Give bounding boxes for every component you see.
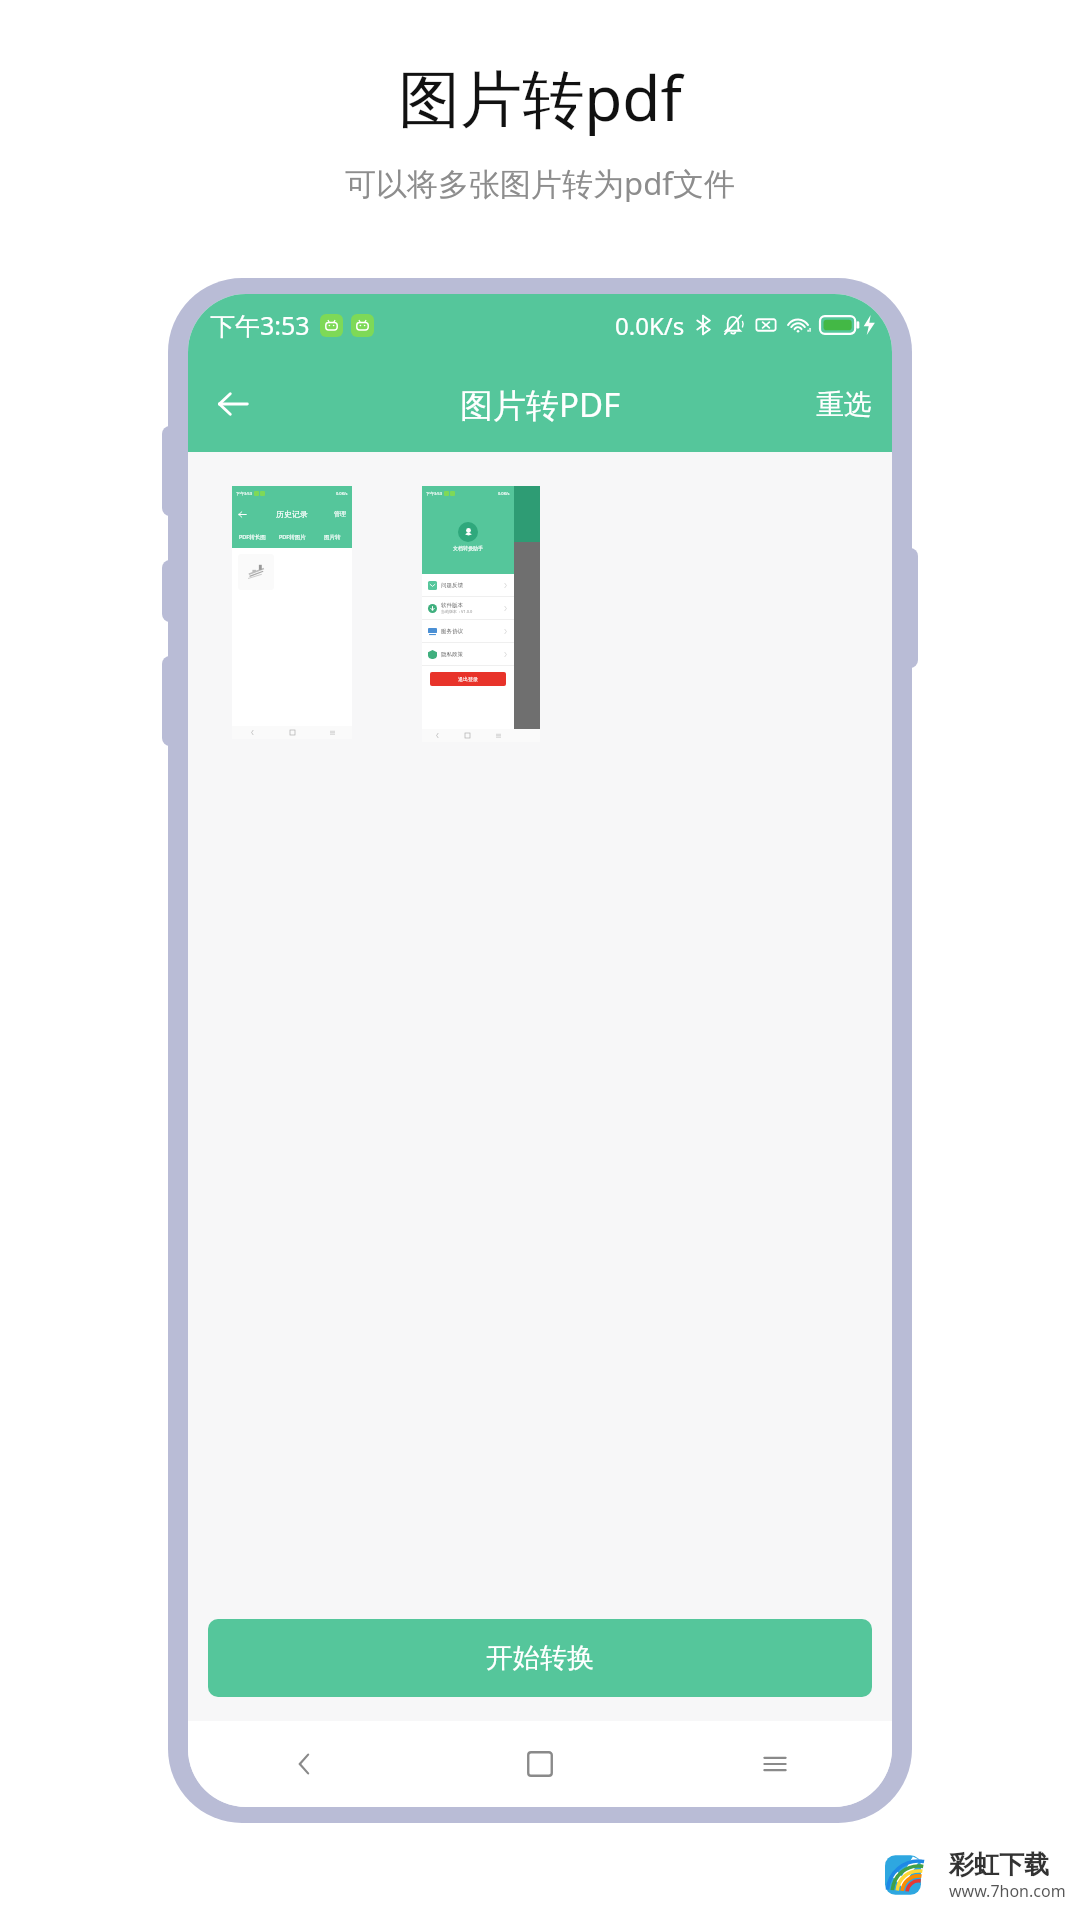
staticText: 0.0K/s	[615, 309, 685, 342]
staticText: 管理	[334, 510, 346, 518]
staticText: 下午3:53	[426, 491, 442, 496]
staticText: 彩虹下载	[949, 1849, 1049, 1880]
staticText: 隐私政策	[441, 651, 463, 658]
staticText: 历史记录	[276, 509, 308, 519]
staticText: 问题反馈	[441, 582, 463, 589]
button[interactable]: 重选	[810, 379, 878, 430]
staticText: 可以将多张图片转为pdf文件	[345, 162, 735, 204]
staticText: 下午3:53	[210, 308, 310, 342]
staticText: PDF转图片	[279, 533, 306, 541]
staticText: 开始转换	[486, 1641, 594, 1675]
staticText: 软件版本	[441, 602, 463, 609]
button[interactable]: 下午3:53	[232, 486, 352, 739]
staticText: 当前版本：V1.0.0	[441, 609, 473, 614]
staticText: 下午3:53	[236, 491, 252, 496]
staticText: 图片转pdf	[398, 55, 682, 140]
staticText: 服务协议	[441, 628, 463, 635]
staticText: 文档转换助手	[453, 545, 483, 551]
button[interactable]: 主屏幕	[422, 1721, 657, 1807]
button[interactable]: 返回	[188, 1721, 422, 1807]
staticText: 0.0K/s	[336, 491, 348, 496]
staticText: PDF转长图	[239, 533, 266, 541]
staticText: 退出登录	[458, 676, 478, 682]
button[interactable]: 开始转换	[208, 1619, 872, 1697]
staticText: 0.0K/s	[498, 491, 510, 496]
button[interactable]: 最近任务	[657, 1721, 892, 1807]
staticText: www.7hon.com	[949, 1880, 1066, 1902]
button[interactable]: 返回	[202, 373, 264, 435]
button[interactable]: 下午3:53	[422, 486, 540, 742]
staticText: 图片转	[324, 534, 341, 541]
staticText: 图片转PDF	[460, 382, 621, 427]
staticText: 重选	[816, 387, 872, 422]
